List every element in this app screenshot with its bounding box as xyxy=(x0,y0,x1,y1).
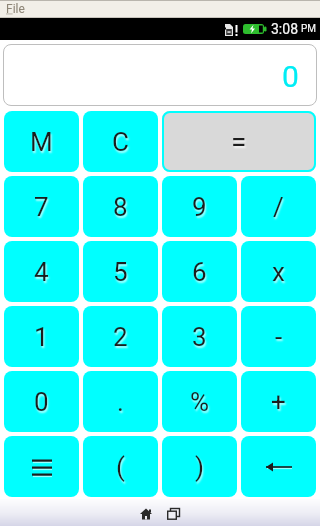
button[interactable]: 1 xyxy=(4,306,79,367)
staticText: / xyxy=(273,192,284,222)
button[interactable]: - xyxy=(241,306,316,367)
button[interactable]: + xyxy=(241,371,316,432)
staticText: 0 xyxy=(282,59,299,94)
button[interactable]: ) xyxy=(162,436,237,497)
staticText: 1 xyxy=(34,322,49,352)
staticText: ) xyxy=(195,452,205,482)
button[interactable]: 8 xyxy=(83,176,158,237)
staticText: 5 xyxy=(113,257,128,287)
staticText: = xyxy=(231,125,247,158)
button[interactable] xyxy=(167,508,180,520)
button[interactable]: 9 xyxy=(162,176,237,237)
staticText: C xyxy=(112,127,129,157)
button[interactable] xyxy=(241,436,316,497)
button[interactable]: C xyxy=(83,111,158,172)
button[interactable]: / xyxy=(241,176,316,237)
button[interactable]: 0 xyxy=(4,371,79,432)
staticText: 3 xyxy=(192,322,207,352)
staticText: 7 xyxy=(34,192,49,222)
staticText: % xyxy=(190,387,210,417)
button[interactable] xyxy=(140,508,152,520)
staticText: + xyxy=(271,387,286,417)
staticText: 2 xyxy=(113,322,128,352)
button[interactable]: = xyxy=(162,111,316,172)
button[interactable]: 7 xyxy=(4,176,79,237)
staticText: M xyxy=(30,127,53,157)
button[interactable]: 6 xyxy=(162,241,237,302)
staticText: 3:08 xyxy=(271,21,298,37)
button[interactable]: x xyxy=(241,241,316,302)
button[interactable]: 4 xyxy=(4,241,79,302)
button[interactable]: % xyxy=(162,371,237,432)
staticText: 8 xyxy=(113,192,128,222)
button[interactable]: . xyxy=(83,371,158,432)
staticText: ( xyxy=(116,452,125,482)
button[interactable]: 2 xyxy=(83,306,158,367)
button[interactable]: ( xyxy=(83,436,158,497)
staticText: . xyxy=(117,387,124,417)
button[interactable]: File xyxy=(6,2,25,16)
button[interactable]: 5 xyxy=(83,241,158,302)
button[interactable]: M xyxy=(4,111,79,172)
staticText: - xyxy=(275,322,283,352)
staticText: 9 xyxy=(192,192,207,222)
staticText: 4 xyxy=(34,257,49,287)
button[interactable]: 3 xyxy=(162,306,237,367)
button[interactable] xyxy=(4,436,79,497)
staticText: x xyxy=(272,257,285,287)
staticText: 0 xyxy=(34,387,49,417)
staticText: PM xyxy=(301,23,317,35)
staticText: 6 xyxy=(192,257,207,287)
